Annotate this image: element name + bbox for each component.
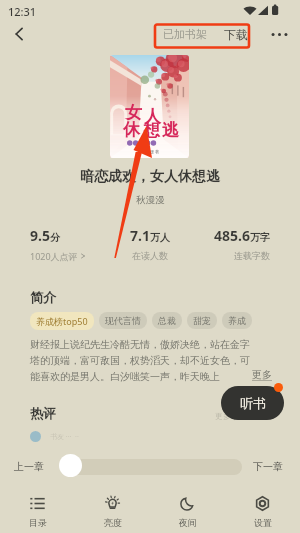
button[interactable]: 设置 [225,490,300,533]
staticText: 书友 ··· ·· [50,432,79,442]
button[interactable]: 总裁 [152,312,182,329]
staticText: 9.5 [30,226,50,245]
staticText: 总裁 [158,315,176,326]
button[interactable]: 7.1 [110,226,190,261]
staticText: 夜间 [179,517,197,528]
staticText: 485.6 [214,226,250,245]
button[interactable] [62,459,242,475]
staticText: 在读人数 [132,250,168,261]
staticText: 财经报上说纪先生冷酷无情，傲娇决绝，站在金字 塔的顶端，富可敌国，权势滔天，却不… [30,338,250,383]
button[interactable]: 下一章 [251,458,285,475]
button[interactable]: 下载 [220,23,252,46]
staticText: 休 [123,119,140,140]
staticText: 已加书架 [163,27,207,41]
button[interactable]: Chapter progress [59,454,82,477]
staticText: 暗恋成欢，女人休想逃 [80,168,220,186]
staticText: 现代言情 [105,315,141,326]
staticText: 女 [125,102,142,123]
staticText: 逃 [162,120,179,141]
staticText: 下载 [224,27,248,42]
staticText: 1020人点评 [30,250,78,262]
staticText: 万人 [150,231,170,244]
staticText: 秋漫漫 著 [142,149,160,154]
staticText: 人 [144,106,161,127]
staticText: 目录 [29,517,47,528]
button[interactable]: 目录 [0,490,75,533]
staticText: 连载字数 [234,250,270,261]
staticText: 想 [143,120,160,141]
staticText: 热评 [30,405,56,421]
button[interactable]: 亮度 [75,490,150,533]
button[interactable]: Book cover [110,55,189,158]
button[interactable]: 上一章 [12,458,46,475]
button[interactable]: 485.6 [190,226,270,261]
staticText: 甜宠 [193,315,211,326]
staticText: 分 [50,231,60,244]
button[interactable]: 听书 [221,386,284,420]
button[interactable]: 养成 [222,312,252,329]
staticText: 7.1 [130,226,150,245]
button[interactable]: 9.5 [30,226,110,262]
staticText: 上一章 [14,460,44,473]
button[interactable]: 养成榜top50 [30,312,94,330]
staticText: 12:31 [8,4,37,19]
staticText: 亮度 [104,517,122,528]
staticText: 更多书评 > [215,410,254,421]
button[interactable]: 夜间 [150,490,225,533]
button[interactable]: 更多 [250,366,274,383]
button[interactable]: 已加书架 [159,23,211,45]
button[interactable]: 甜宠 [187,312,217,329]
staticText: 简介 [30,289,56,305]
button[interactable]: 现代言情 [99,312,147,329]
staticText: 设置 [254,517,272,528]
staticText: 养成榜top50 [36,315,88,327]
button[interactable]: More options [270,25,288,43]
staticText: 养成 [228,315,246,326]
staticText: 听书 [240,395,266,411]
staticText: 下一章 [253,460,283,473]
staticText: 秋漫漫 [136,194,165,206]
staticText: 更多 [252,368,272,381]
staticText: 万字 [250,231,270,244]
button[interactable]: 更多书评 > [214,409,255,422]
button[interactable]: Back [6,22,32,46]
